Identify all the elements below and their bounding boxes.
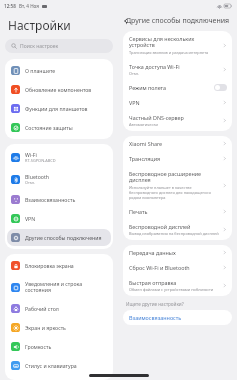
button[interactable]: VPN [7, 210, 111, 227]
staticText: Трансляция [129, 155, 161, 162]
staticText: Другие способы подключения [126, 16, 230, 26]
staticText: Обмен файлами с устройствами поблизости [129, 287, 214, 292]
button[interactable]: Стилус и клавиатура [7, 357, 111, 374]
staticText: Беспроводной дисплей [129, 223, 191, 230]
button[interactable]: Точка доступа Wi-Fi [123, 59, 232, 80]
button[interactable]: Быстрая отправка [123, 275, 232, 296]
button[interactable]: Беспроводной дисплей [123, 219, 232, 240]
button[interactable]: Режим полета [123, 80, 232, 95]
staticText: Взаимосвязанность [25, 196, 76, 203]
staticText: Точка доступа Wi-Fi [129, 63, 180, 70]
button[interactable]: Экран и яркость [7, 319, 111, 336]
button[interactable]: Сервисы для нескольких устройств [123, 31, 232, 59]
button[interactable]: Взаимосвязанность [7, 191, 111, 208]
button[interactable]: Bluetooth [7, 169, 111, 189]
button[interactable]: Уведомления и строка состояния [7, 276, 111, 298]
staticText: Настройки [8, 17, 71, 33]
staticText: О планшете [25, 67, 56, 74]
staticText: Частный DNS-сервер [129, 114, 184, 121]
button[interactable]: Взаимосвязанность [123, 310, 232, 325]
staticText: Блокировка экрана [25, 262, 74, 269]
staticText: Используйте планшет в качестве беспровод… [129, 185, 219, 200]
staticText: Откл. [129, 71, 140, 76]
staticText: Беспроводное расширение дисплея [129, 170, 219, 184]
staticText: Ищете другие настройки? [126, 301, 184, 307]
staticText: Печать [129, 208, 148, 215]
button[interactable]: Передача данных [123, 245, 232, 260]
staticText: Bluetooth [25, 173, 50, 180]
button[interactable]: Назад [120, 15, 132, 27]
staticText: Обновление компонентов [25, 86, 92, 93]
button[interactable]: Частный DNS-сервер [123, 110, 232, 131]
staticText: Сброс Wi-Fi и Bluetooth [129, 264, 190, 271]
button[interactable]: Беспроводное расширение дисплея [123, 166, 232, 204]
staticText: Xiaomi Share [129, 140, 163, 147]
staticText: Вывод изображения на беспроводной диспле… [129, 231, 219, 236]
button[interactable]: Рабочий стол [7, 300, 111, 317]
staticText: VPN [25, 215, 36, 222]
staticText: Уведомления и строка состояния [25, 280, 107, 294]
button[interactable]: Персонализация [7, 376, 111, 377]
staticText: Поиск настроек [20, 43, 59, 50]
button[interactable]: Трансляция [123, 151, 232, 166]
staticText: Сервисы для нескольких устройств [129, 35, 219, 49]
staticText: RT-5GPON-ABCD [25, 158, 56, 163]
staticText: Состояние защиты [25, 124, 73, 131]
staticText: Трансляция звонков и раздача интернета [129, 50, 209, 55]
button[interactable]: Wi-Fi [7, 147, 111, 167]
staticText: Режим полета [129, 84, 167, 91]
staticText: Передача данных [129, 249, 176, 256]
staticText: Вт, 4 Ноя [19, 3, 39, 9]
button[interactable]: Блокировка экрана [7, 257, 111, 274]
button[interactable]: Обновление компонентов [7, 81, 111, 98]
button[interactable]: Функции для планшетов [7, 100, 111, 117]
staticText: Взаимосвязанность [129, 314, 182, 321]
staticText: Автоматически [129, 122, 158, 127]
staticText: Откл. [25, 180, 36, 185]
button[interactable]: Печать [123, 204, 232, 219]
staticText: Функции для планшетов [25, 105, 88, 112]
staticText: Рабочий стол [25, 305, 59, 312]
staticText: Wi-Fi [25, 151, 37, 158]
button[interactable]: Поиск настроек [5, 39, 113, 53]
staticText: Стилус и клавиатура [25, 362, 77, 369]
staticText: VPN [129, 99, 140, 106]
staticText: Быстрая отправка [129, 279, 177, 286]
staticText: 12:58 [4, 3, 16, 9]
button[interactable]: VPN [123, 95, 232, 110]
button[interactable]: О планшете [7, 62, 111, 79]
staticText: Громкость [25, 343, 52, 350]
button[interactable]: Другие способы подключения [7, 229, 111, 246]
staticText: Другие способы подключения [25, 234, 102, 241]
button[interactable]: Сброс Wi-Fi и Bluetooth [123, 260, 232, 275]
button[interactable]: Xiaomi Share [123, 136, 232, 151]
button[interactable]: Состояние защиты [7, 119, 111, 136]
button[interactable]: Громкость [7, 338, 111, 355]
staticText: Экран и яркость [25, 324, 66, 331]
